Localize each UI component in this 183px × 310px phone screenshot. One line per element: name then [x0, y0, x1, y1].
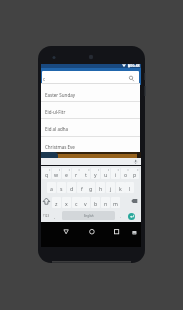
staticText: r — [75, 171, 78, 178]
staticText: j — [110, 185, 112, 192]
button[interactable]: s — [57, 182, 66, 193]
button[interactable] — [84, 225, 99, 240]
button[interactable]: Eid al adha — [45, 120, 135, 137]
button[interactable] — [110, 225, 125, 240]
button[interactable]: u — [101, 168, 110, 179]
staticText: f — [81, 185, 83, 192]
staticText: a — [50, 185, 53, 192]
staticText: z — [55, 200, 58, 207]
button[interactable]: , — [52, 211, 58, 221]
staticText: , — [54, 214, 56, 219]
button[interactable]: g — [86, 182, 95, 193]
staticText: m — [113, 200, 118, 207]
button[interactable]: t — [81, 168, 90, 179]
staticText: English — [84, 214, 94, 218]
staticText: Easter Sunday — [45, 92, 75, 98]
staticText: q — [45, 171, 49, 178]
staticText: u — [104, 171, 108, 178]
button[interactable]: c — [72, 197, 81, 208]
staticText: i — [115, 171, 117, 178]
button[interactable]: q — [42, 168, 51, 179]
staticText: k — [119, 185, 122, 192]
button[interactable] — [128, 213, 135, 220]
staticText: c — [75, 200, 78, 207]
staticText: c — [43, 76, 46, 82]
staticText: y — [94, 171, 97, 178]
staticText: t — [85, 171, 87, 178]
staticText: e — [65, 171, 68, 178]
button[interactable]: Easter Sunday — [45, 86, 135, 103]
button[interactable]: x — [62, 197, 71, 208]
button[interactable]: i — [111, 168, 120, 179]
staticText: ?123 — [43, 214, 50, 218]
button[interactable]: l — [125, 182, 134, 193]
button[interactable] — [41, 158, 141, 165]
staticText: 06:48 — [130, 63, 140, 68]
button[interactable]: n — [101, 197, 110, 208]
button[interactable]: j — [106, 182, 115, 193]
button[interactable]: d — [67, 182, 76, 193]
button[interactable]: o — [121, 168, 130, 179]
staticText: x — [65, 200, 68, 207]
staticText: Eid-ul-Fitr — [45, 109, 66, 115]
button[interactable]: a — [47, 182, 56, 193]
button[interactable]: b — [91, 197, 100, 208]
staticText: h — [99, 185, 103, 192]
button[interactable]: w — [52, 168, 61, 179]
button[interactable]: p — [130, 168, 139, 179]
staticText: Eid al adha — [45, 126, 69, 132]
button[interactable]: r — [72, 168, 81, 179]
staticText: d — [70, 185, 74, 192]
staticText: w — [54, 171, 59, 178]
staticText: . — [120, 214, 122, 219]
button[interactable]: k — [116, 182, 125, 193]
button[interactable]: e — [62, 168, 71, 179]
staticText: b — [94, 200, 98, 207]
button[interactable]: ?123 — [42, 211, 51, 221]
button[interactable]: h — [96, 182, 105, 193]
staticText: s — [60, 185, 63, 192]
staticText: o — [124, 171, 128, 178]
button[interactable]: y — [91, 168, 100, 179]
button[interactable]: English — [62, 211, 115, 220]
button[interactable] — [58, 225, 73, 240]
button[interactable]: Eid-ul-Fitr — [45, 103, 135, 120]
button[interactable]: f — [77, 182, 86, 193]
staticText: n — [104, 200, 108, 207]
button[interactable]: v — [81, 197, 90, 208]
staticText: v — [84, 200, 87, 207]
staticText: Christmas Eve — [45, 144, 75, 150]
button[interactable] — [42, 71, 139, 84]
button[interactable]: Christmas Eve — [45, 138, 135, 155]
button[interactable]: z — [52, 197, 61, 208]
button[interactable]: m — [111, 197, 120, 208]
staticText: p — [133, 171, 137, 178]
staticText: l — [129, 185, 131, 192]
staticText: g — [89, 185, 93, 192]
